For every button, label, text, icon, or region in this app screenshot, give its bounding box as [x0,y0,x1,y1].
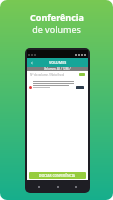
button[interactable] [79,73,85,76]
staticText: VOLUMES [49,60,67,65]
button[interactable]: Back [30,61,34,65]
staticText: de volumes [32,23,81,35]
staticText: Volumes: 48 / 1286 / [44,67,71,71]
staticText: Conferência [30,11,84,23]
button[interactable]: INICIAR CONFERÊNCIA [29,172,86,179]
staticText: N° do volume / Nota fiscal [30,73,65,77]
staticText: INICIAR CONFERÊNCIA [39,174,76,178]
button[interactable] [27,79,88,95]
